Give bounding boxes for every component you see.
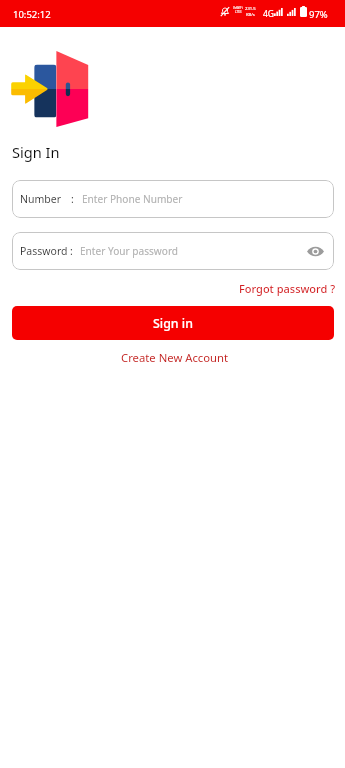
staticText: Create New Account xyxy=(121,350,229,365)
staticText: LTE3 xyxy=(235,10,242,14)
other: App logo xyxy=(8,44,96,132)
staticText: 231.5 xyxy=(245,6,256,12)
button[interactable]: Show password xyxy=(304,240,326,262)
staticText: Sign In xyxy=(12,142,60,162)
staticText: : xyxy=(70,244,73,258)
button[interactable]: Password xyxy=(12,232,334,270)
staticText: 10:52:12 xyxy=(13,8,51,21)
staticText: Forgot password ? xyxy=(239,281,336,296)
staticText: 4G xyxy=(263,8,275,20)
button[interactable]: Create New Account xyxy=(118,347,232,368)
staticText: 97% xyxy=(309,8,328,21)
staticText: Number xyxy=(20,192,62,206)
staticText: : xyxy=(71,192,74,206)
staticText: VoWiFi xyxy=(233,6,243,10)
staticText: Sign in xyxy=(153,315,193,332)
staticText: KB/s xyxy=(246,12,255,18)
staticText: Password xyxy=(20,244,68,258)
button[interactable]: Forgot password ? xyxy=(236,278,339,299)
other: Alarm muted xyxy=(220,6,230,17)
staticText: Enter Phone Number xyxy=(82,192,183,206)
button[interactable]: Number xyxy=(12,180,334,218)
staticText: Enter Your password xyxy=(80,244,179,258)
button[interactable]: Sign in xyxy=(12,306,334,340)
